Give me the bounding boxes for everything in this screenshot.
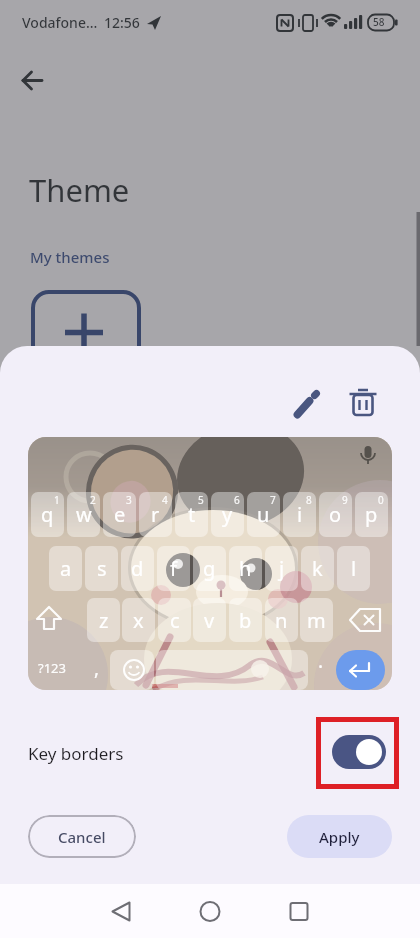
staticText: 8 (306, 493, 312, 507)
button[interactable]: v (193, 598, 226, 642)
button[interactable]: x (122, 598, 155, 642)
button[interactable]: Apply (287, 815, 392, 858)
staticText: . (318, 648, 324, 674)
staticText: Cancel (58, 827, 106, 847)
staticText: f (170, 555, 177, 582)
button[interactable]: g (193, 546, 226, 591)
staticText: b (239, 607, 252, 634)
staticText: r (151, 501, 160, 528)
button[interactable]: b (229, 598, 262, 642)
button[interactable]: l (337, 546, 370, 591)
staticText: 7 (270, 493, 276, 507)
button[interactable]: m (300, 598, 333, 642)
button[interactable]: t (175, 492, 208, 537)
staticText: s (97, 555, 107, 582)
staticText: d (131, 555, 144, 582)
button[interactable]: q (31, 492, 64, 537)
staticText: Theme (29, 169, 130, 211)
staticText: c (170, 607, 180, 634)
button[interactable]: h (229, 546, 262, 591)
button[interactable] (110, 650, 154, 690)
button[interactable]: r (139, 492, 172, 537)
button[interactable]: o (319, 492, 352, 537)
button[interactable]: u (247, 492, 280, 537)
button[interactable]: d (121, 546, 154, 591)
staticText: 3 (126, 493, 132, 507)
staticText: 6 (234, 493, 240, 507)
button[interactable]: i (283, 492, 316, 537)
button[interactable]: s (85, 546, 118, 591)
staticText: n (275, 607, 288, 634)
staticText: , (94, 655, 100, 681)
staticText: Vodafone… (22, 13, 98, 32)
button[interactable] (31, 290, 141, 400)
staticText: 5 (198, 493, 204, 507)
button[interactable]: a (49, 546, 82, 591)
button[interactable] (336, 650, 385, 690)
staticText: l (351, 555, 357, 582)
staticText: a (60, 555, 72, 582)
staticText: x (133, 607, 144, 634)
staticText: Key borders (28, 742, 124, 765)
staticText: e (114, 501, 126, 528)
button[interactable] (343, 382, 383, 422)
staticText: 9 (342, 493, 348, 507)
staticText: t (188, 501, 196, 528)
button[interactable]: k (301, 546, 334, 591)
staticText: i (297, 501, 303, 528)
button[interactable] (281, 893, 317, 929)
button[interactable]: n (265, 598, 298, 642)
staticText: h (239, 555, 252, 582)
staticText: 1 (54, 493, 60, 507)
staticText: z (99, 607, 109, 634)
button[interactable]: y (211, 492, 244, 537)
staticText: y (222, 501, 233, 528)
staticText: q (41, 501, 54, 528)
button[interactable]: f (157, 546, 190, 591)
staticText: p (365, 501, 378, 528)
button[interactable] (288, 382, 328, 422)
button[interactable]: c (158, 598, 191, 642)
button[interactable]: z (87, 598, 120, 642)
staticText: o (329, 501, 342, 528)
button[interactable]: w (67, 492, 100, 537)
staticText: 58 (373, 15, 385, 29)
button[interactable] (156, 650, 308, 690)
button[interactable] (332, 735, 386, 769)
staticText: u (257, 501, 270, 528)
staticText: k (312, 555, 323, 582)
staticText: g (203, 555, 216, 582)
staticText: Apply (319, 827, 360, 847)
staticText: v (204, 607, 215, 634)
staticText: j (279, 555, 285, 582)
button[interactable] (192, 893, 228, 929)
staticText: 12:56 (104, 13, 140, 32)
staticText: 2 (90, 493, 96, 507)
staticText: My themes (30, 247, 110, 267)
button[interactable] (103, 893, 139, 929)
staticText: m (307, 607, 326, 634)
staticText: w (76, 501, 92, 528)
staticText: ?123 (38, 659, 66, 677)
button[interactable]: e (103, 492, 136, 537)
button[interactable]: j (265, 546, 298, 591)
button[interactable]: p (355, 492, 388, 537)
button[interactable]: Cancel (28, 815, 136, 858)
staticText: 4 (162, 493, 168, 507)
staticText: 0 (378, 493, 384, 507)
